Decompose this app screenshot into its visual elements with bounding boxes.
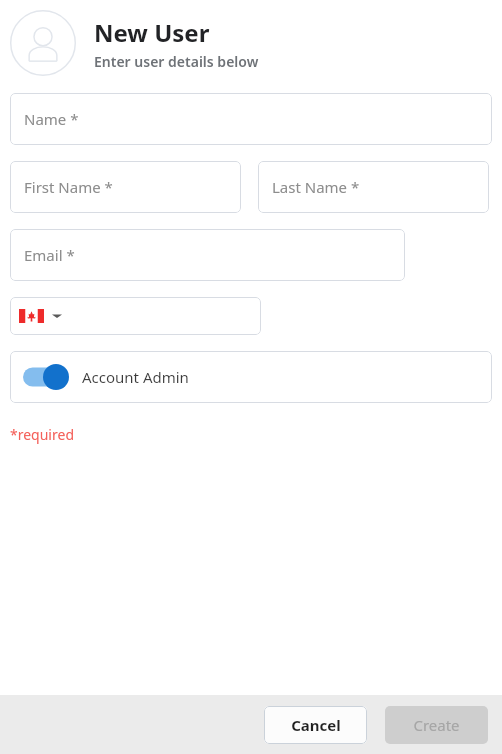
staticText: Create [413,715,460,735]
staticText: Last Name * [272,177,360,197]
staticText: *required [10,425,74,444]
button[interactable]: Email * [10,229,405,281]
staticText: Cancel [291,715,341,735]
staticText: Email * [24,245,75,265]
staticText: Enter user details below [94,52,259,71]
button[interactable]: Name * [10,93,492,145]
button[interactable]: First Name * [10,161,241,213]
button[interactable]: Create [385,706,488,744]
button[interactable]: Cancel [264,706,367,744]
staticText: New User [94,16,210,49]
staticText: Name * [24,109,79,129]
staticText: Account Admin [82,367,189,387]
button[interactable]: Last Name * [258,161,489,213]
staticText: First Name * [24,177,113,197]
button[interactable]: Select country [10,297,261,335]
button[interactable]: Account Admin [10,351,492,403]
